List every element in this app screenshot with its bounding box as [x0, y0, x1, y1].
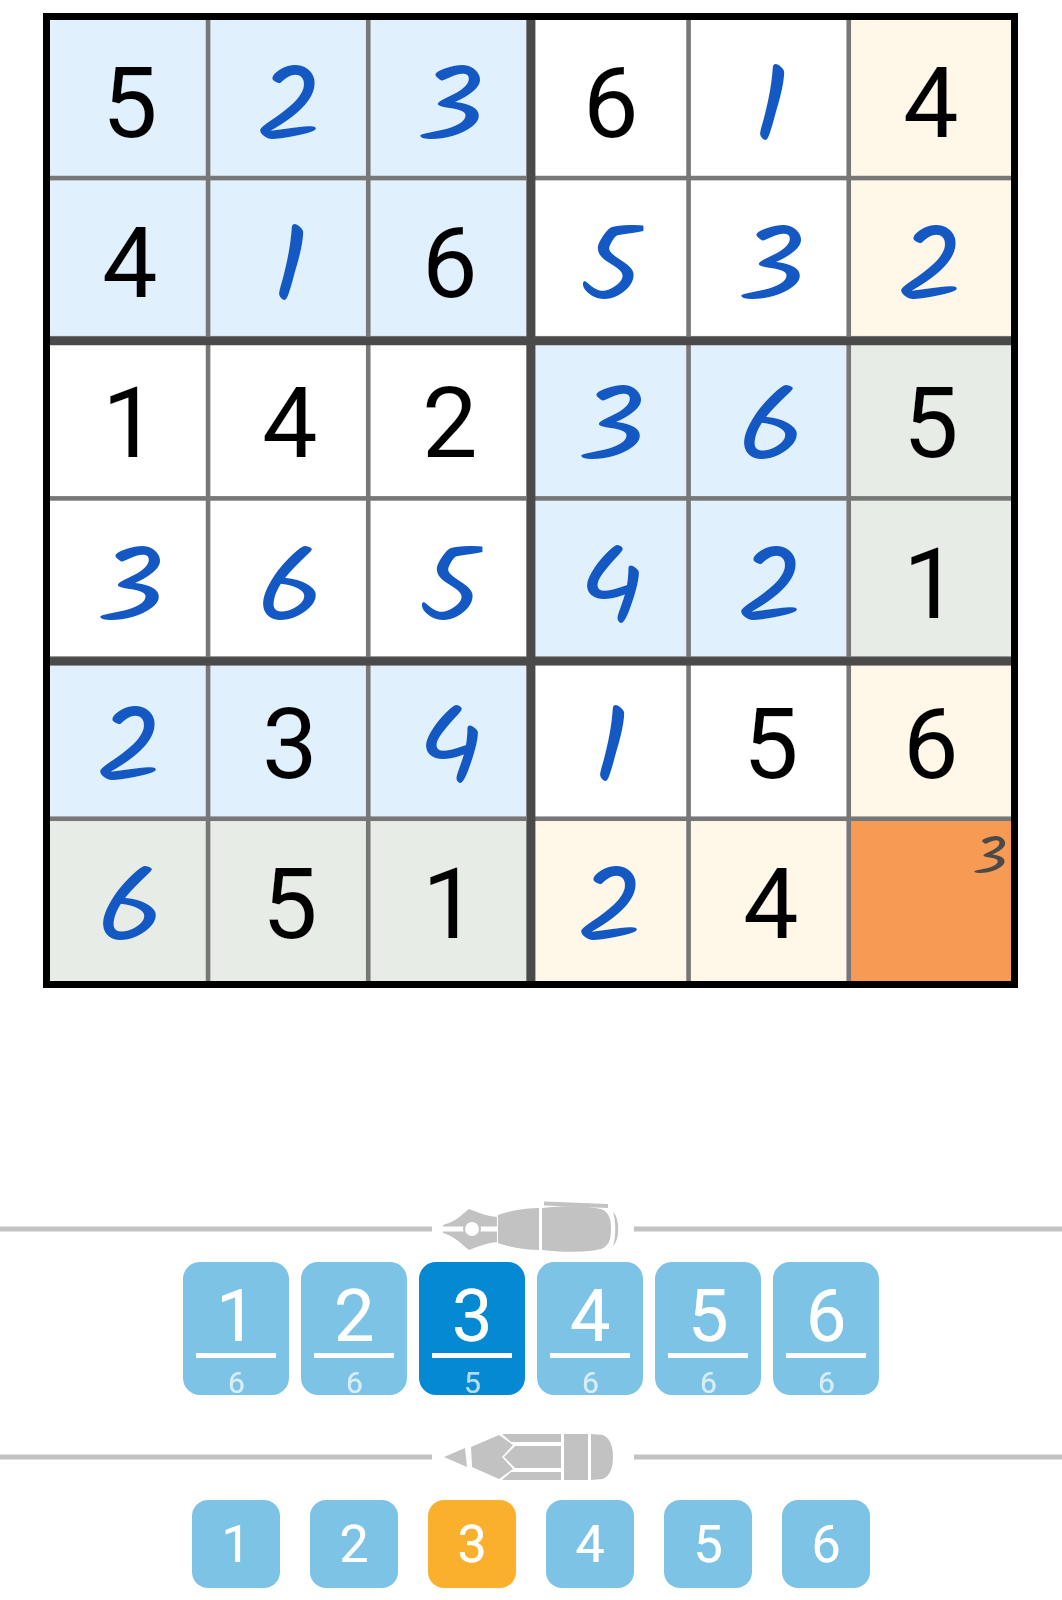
button[interactable]: 6	[531, 20, 691, 180]
staticText: 6	[97, 829, 164, 989]
staticText: 1	[271, 188, 309, 348]
button[interactable]: 1	[210, 180, 370, 340]
staticText: 5	[743, 686, 799, 802]
staticText: 1	[221, 1514, 251, 1575]
staticText: 6	[806, 1274, 847, 1358]
staticText: 4	[417, 669, 484, 829]
button[interactable]: 2	[301, 1262, 407, 1395]
button[interactable]: 1	[50, 340, 210, 500]
button[interactable]: 2	[691, 501, 851, 661]
button[interactable]: 2	[370, 340, 530, 500]
button[interactable]: 3	[50, 501, 210, 661]
staticText: 5	[903, 365, 959, 481]
button[interactable]: 3	[210, 661, 370, 821]
button[interactable]: 5	[50, 20, 210, 180]
button[interactable]: 4	[531, 501, 691, 661]
button[interactable]: 3	[851, 821, 1011, 981]
button[interactable]: 5	[691, 661, 851, 821]
button[interactable]: 4	[370, 661, 530, 821]
staticText: 5	[464, 1365, 481, 1395]
staticText: 3	[737, 188, 806, 348]
button[interactable]: 1	[192, 1500, 280, 1588]
button[interactable]: 4	[50, 180, 210, 340]
staticText: 4	[575, 1514, 605, 1575]
staticText: 4	[903, 45, 959, 161]
button[interactable]: 4	[546, 1500, 634, 1588]
staticText: 6	[700, 1365, 717, 1395]
staticText: 1	[102, 365, 158, 481]
button[interactable]: 2	[310, 1500, 398, 1588]
button[interactable]: 2	[851, 180, 1011, 340]
staticText: 1	[903, 526, 959, 642]
button[interactable]: 3	[428, 1500, 516, 1588]
button[interactable]: 5	[655, 1262, 761, 1395]
staticText: 5	[419, 509, 482, 669]
staticText: 6	[811, 1514, 841, 1575]
staticText: 2	[339, 1514, 369, 1575]
staticText: 5	[262, 846, 318, 962]
button[interactable]: 5	[370, 501, 530, 661]
button[interactable]: 2	[531, 821, 691, 981]
staticText: 3	[972, 819, 1008, 902]
button[interactable]: 6	[851, 661, 1011, 821]
staticText: 1	[752, 28, 790, 188]
staticText: 5	[693, 1514, 723, 1575]
button[interactable]: 4	[210, 340, 370, 500]
staticText: 2	[255, 28, 325, 188]
staticText: 6	[228, 1365, 245, 1395]
staticText: 3	[457, 1514, 487, 1575]
button[interactable]: 4	[691, 821, 851, 981]
button[interactable]: 4	[537, 1262, 643, 1395]
button[interactable]: 3	[531, 340, 691, 500]
staticText: 3	[452, 1274, 493, 1358]
staticText: 6	[738, 348, 805, 508]
staticText: 6	[257, 509, 324, 669]
staticText: 3	[416, 28, 485, 188]
button[interactable]: 3	[419, 1262, 525, 1395]
staticText: 2	[736, 509, 806, 669]
staticText: 6	[422, 205, 478, 321]
staticText: 1	[216, 1274, 257, 1358]
button[interactable]: 6	[50, 821, 210, 981]
button[interactable]: 1	[531, 661, 691, 821]
button[interactable]: 1	[183, 1262, 289, 1395]
staticText: 4	[743, 846, 799, 962]
staticText: 5	[580, 188, 643, 348]
staticText: 5	[102, 45, 158, 161]
staticText: 6	[903, 686, 959, 802]
button[interactable]: 5	[851, 340, 1011, 500]
button[interactable]: 5	[531, 180, 691, 340]
button[interactable]: 4	[851, 20, 1011, 180]
button[interactable]: 5	[210, 821, 370, 981]
staticText: 4	[570, 1274, 611, 1358]
button[interactable]: 6	[782, 1500, 870, 1588]
button[interactable]: 6	[691, 340, 851, 500]
button[interactable]: 1	[691, 20, 851, 180]
staticText: 6	[818, 1365, 835, 1395]
button[interactable]: Pen mode	[0, 1194, 1062, 1264]
button[interactable]: 5	[664, 1500, 752, 1588]
staticText: 2	[334, 1274, 375, 1358]
staticText: 2	[422, 365, 478, 481]
button[interactable]: 3	[370, 20, 530, 180]
button[interactable]: Pencil mode	[0, 1422, 1062, 1492]
staticText: 2	[95, 669, 165, 829]
button[interactable]: 6	[773, 1262, 879, 1395]
button[interactable]: 1	[851, 501, 1011, 661]
button[interactable]: 1	[370, 821, 530, 981]
button[interactable]: 3	[691, 180, 851, 340]
staticText: 6	[583, 45, 639, 161]
button[interactable]: 6	[210, 501, 370, 661]
staticText: 3	[96, 509, 165, 669]
staticText: 6	[346, 1365, 363, 1395]
staticText: 1	[422, 846, 478, 962]
staticText: 5	[688, 1274, 729, 1358]
button[interactable]: 2	[210, 20, 370, 180]
button[interactable]: 6	[370, 180, 530, 340]
staticText: 4	[262, 365, 318, 481]
staticText: 1	[592, 669, 630, 829]
staticText: 2	[576, 829, 646, 989]
staticText: 6	[582, 1365, 599, 1395]
staticText: 4	[102, 205, 158, 321]
button[interactable]: 2	[50, 661, 210, 821]
